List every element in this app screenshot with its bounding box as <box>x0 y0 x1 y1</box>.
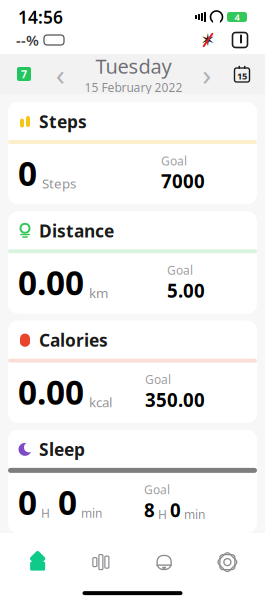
staticText: 0 <box>18 151 37 195</box>
button[interactable]: Notifications <box>132 545 196 579</box>
staticText: 15 <box>237 70 247 82</box>
staticText: Steps <box>39 110 87 133</box>
staticText: 7 <box>21 67 27 81</box>
staticText: Distance <box>39 219 114 242</box>
staticText: › <box>202 54 211 93</box>
staticText: 0 <box>170 498 181 522</box>
staticText: 0 <box>18 480 37 524</box>
staticText: 0 <box>58 480 77 524</box>
staticText: Goal <box>167 262 193 278</box>
staticText: 5.00 <box>167 278 205 303</box>
staticText: H <box>158 506 167 522</box>
button[interactable]: Previous day <box>47 59 73 89</box>
button[interactable]: Settings <box>196 545 259 579</box>
staticText: 4 <box>234 11 239 23</box>
staticText: Goal <box>145 371 171 387</box>
button[interactable]: Statistics <box>69 545 132 579</box>
staticText: Tuesday <box>95 53 171 79</box>
staticText: ‹ <box>56 54 65 93</box>
staticText: Goal <box>161 153 187 169</box>
staticText: H <box>41 505 50 521</box>
staticText: km <box>89 284 108 302</box>
staticText: Calories <box>39 329 108 352</box>
button[interactable]: Share <box>231 31 249 49</box>
staticText: 0.00 <box>18 370 84 414</box>
button[interactable]: Pick date <box>231 64 253 83</box>
button[interactable]: Next day <box>194 59 220 89</box>
staticText: kcal <box>89 393 112 411</box>
staticText: Goal <box>144 482 170 497</box>
staticText: --% <box>16 30 39 50</box>
staticText: min <box>81 505 102 521</box>
staticText: 7000 <box>161 169 205 193</box>
button[interactable]: Today <box>12 66 36 82</box>
staticText: 14:56 <box>18 5 63 28</box>
button[interactable]: Bluetooth off <box>199 31 217 49</box>
staticText: 350.00 <box>145 387 205 412</box>
staticText: min <box>184 506 205 522</box>
staticText: Sleep <box>39 438 85 461</box>
staticText: ✶ <box>200 30 215 50</box>
button[interactable]: Home <box>6 545 69 579</box>
staticText: 15 February 2022 <box>84 79 182 95</box>
staticText: 8 <box>144 498 155 522</box>
staticText: 0.00 <box>18 260 84 305</box>
staticText: Steps <box>42 175 76 192</box>
